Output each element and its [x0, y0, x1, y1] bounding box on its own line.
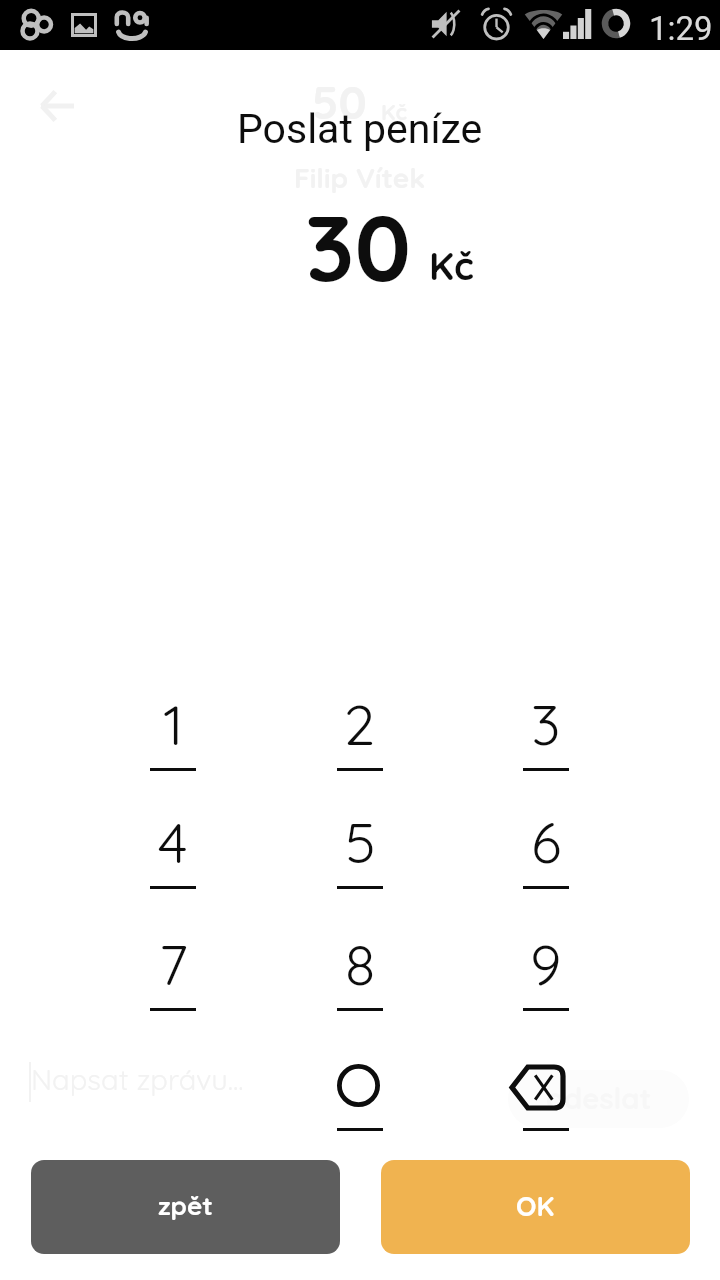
- button[interactable]: 1: [111, 689, 235, 785]
- staticText: Kč: [381, 98, 407, 126]
- staticText: odeslat: [546, 1080, 652, 1116]
- button[interactable]: 4: [111, 807, 235, 903]
- button[interactable]: 9: [484, 929, 608, 1025]
- staticText: 3: [531, 689, 561, 759]
- staticText: 8: [345, 929, 376, 999]
- staticText: 5: [345, 807, 376, 877]
- other: Backspace: [509, 1064, 566, 1111]
- staticText: OK: [516, 1189, 555, 1223]
- staticText: 9: [530, 929, 562, 999]
- button[interactable]: 2: [298, 689, 422, 785]
- button[interactable]: 8: [298, 929, 422, 1025]
- button[interactable]: 0: [298, 1050, 422, 1145]
- staticText: 7: [159, 929, 188, 999]
- staticText: 6: [531, 807, 562, 877]
- button[interactable]: zpět: [31, 1160, 340, 1254]
- button[interactable]: 7: [111, 929, 235, 1025]
- button[interactable]: 5: [298, 807, 422, 903]
- staticText: 4: [158, 807, 188, 877]
- other: 0: [337, 1064, 380, 1107]
- staticText: 50: [312, 73, 367, 131]
- staticText: zpět: [158, 1189, 213, 1222]
- staticText: Poslat peníze: [237, 105, 483, 153]
- staticText: 30: [305, 189, 411, 304]
- staticText: Napsat zprávu...: [31, 1061, 244, 1097]
- button[interactable]: Backspace: [484, 1050, 608, 1145]
- staticText: Kč: [429, 242, 474, 290]
- button[interactable]: 3: [484, 689, 608, 785]
- button[interactable]: Back: [24, 73, 90, 139]
- button[interactable]: OK: [381, 1160, 690, 1254]
- staticText: 1:29: [649, 9, 713, 48]
- button[interactable]: 6: [484, 807, 608, 903]
- staticText: 2: [344, 689, 376, 759]
- staticText: 1: [163, 689, 184, 759]
- staticText: Filip Vítek: [294, 160, 426, 195]
